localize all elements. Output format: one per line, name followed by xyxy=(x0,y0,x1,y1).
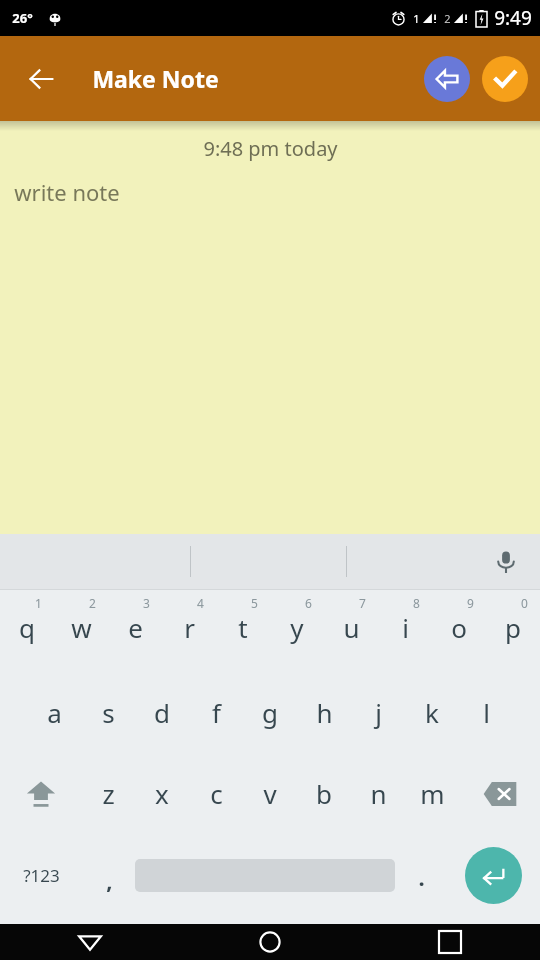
button[interactable]: Back xyxy=(0,924,180,960)
button[interactable]: Backspace xyxy=(459,753,540,834)
staticText: u xyxy=(343,610,360,645)
button[interactable]: 4 xyxy=(162,590,216,672)
staticText: 1 xyxy=(35,595,42,611)
button[interactable]: 9 xyxy=(432,590,486,672)
button[interactable]: v xyxy=(243,753,297,834)
staticText: a xyxy=(47,695,62,730)
button[interactable]: Enter xyxy=(447,834,540,916)
staticText: 9:49 xyxy=(494,5,532,31)
button[interactable]: d xyxy=(135,672,189,753)
button[interactable]: 3 xyxy=(108,590,162,672)
button[interactable]: 0 xyxy=(486,590,540,672)
staticText: c xyxy=(210,776,223,811)
staticText: j xyxy=(375,695,382,730)
staticText: Make Note xyxy=(92,63,219,94)
button[interactable]: Space xyxy=(135,834,395,916)
button[interactable]: x xyxy=(135,753,189,834)
staticText: 0 xyxy=(521,595,528,611)
staticText: . xyxy=(418,862,425,892)
staticText: i xyxy=(402,610,409,645)
staticText: 7 xyxy=(359,595,366,611)
button[interactable]: 1 xyxy=(0,590,54,672)
staticText: g xyxy=(262,695,278,730)
button[interactable]: 7 xyxy=(324,590,378,672)
button[interactable]: ?123 xyxy=(0,834,83,916)
staticText: e xyxy=(128,610,143,645)
button[interactable]: c xyxy=(189,753,243,834)
button[interactable]: 2 xyxy=(54,590,108,672)
staticText: 26° xyxy=(12,9,33,27)
button[interactable]: 5 xyxy=(216,590,270,672)
staticText: f xyxy=(212,695,221,730)
button[interactable]: , xyxy=(83,834,135,916)
button[interactable]: Voice input xyxy=(484,540,528,584)
staticText: m xyxy=(420,776,445,811)
staticText: d xyxy=(154,695,170,730)
staticText: 9 xyxy=(467,595,474,611)
button[interactable]: f xyxy=(189,672,243,753)
staticText: w xyxy=(71,610,92,645)
staticText: 6 xyxy=(305,595,312,611)
staticText: 5 xyxy=(251,595,258,611)
staticText: 2 xyxy=(444,11,451,26)
staticText: q xyxy=(19,610,35,645)
staticText: o xyxy=(451,610,467,645)
staticText: 1 xyxy=(413,11,420,26)
staticText: b xyxy=(316,776,332,811)
staticText: k xyxy=(425,695,439,730)
button[interactable]: . xyxy=(395,834,447,916)
staticText: x xyxy=(155,776,169,811)
staticText: 3 xyxy=(143,595,150,611)
button[interactable]: z xyxy=(81,753,135,834)
staticText: 4 xyxy=(197,595,204,611)
button[interactable]: Home xyxy=(180,924,360,960)
button[interactable]: Back xyxy=(14,51,70,107)
button[interactable]: Recent apps xyxy=(360,924,540,960)
button[interactable]: Save note xyxy=(482,56,528,102)
staticText: z xyxy=(102,776,115,811)
staticText: ?123 xyxy=(23,864,60,887)
staticText: s xyxy=(102,695,115,730)
button[interactable]: h xyxy=(297,672,351,753)
staticText: r xyxy=(184,610,195,645)
staticText: p xyxy=(505,610,521,645)
staticText: y xyxy=(290,610,304,645)
staticText: write note xyxy=(14,177,120,207)
button[interactable]: j xyxy=(351,672,405,753)
button[interactable]: a xyxy=(27,672,81,753)
button[interactable]: s xyxy=(81,672,135,753)
button[interactable]: b xyxy=(297,753,351,834)
staticText: 8 xyxy=(413,595,420,611)
button[interactable]: Undo xyxy=(424,56,470,102)
button[interactable]: 8 xyxy=(378,590,432,672)
button[interactable]: l xyxy=(459,672,513,753)
button[interactable]: g xyxy=(243,672,297,753)
staticText: t xyxy=(238,610,248,645)
staticText: 2 xyxy=(89,595,96,611)
button[interactable]: m xyxy=(405,753,459,834)
staticText: 9:48 pm today xyxy=(203,135,338,162)
staticText: h xyxy=(316,695,333,730)
button[interactable]: 6 xyxy=(270,590,324,672)
button[interactable]: Shift xyxy=(0,753,81,834)
staticText: , xyxy=(106,865,113,895)
staticText: n xyxy=(370,776,387,811)
button[interactable]: k xyxy=(405,672,459,753)
staticText: l xyxy=(483,695,490,730)
button[interactable]: n xyxy=(351,753,405,834)
staticText: v xyxy=(263,776,277,811)
